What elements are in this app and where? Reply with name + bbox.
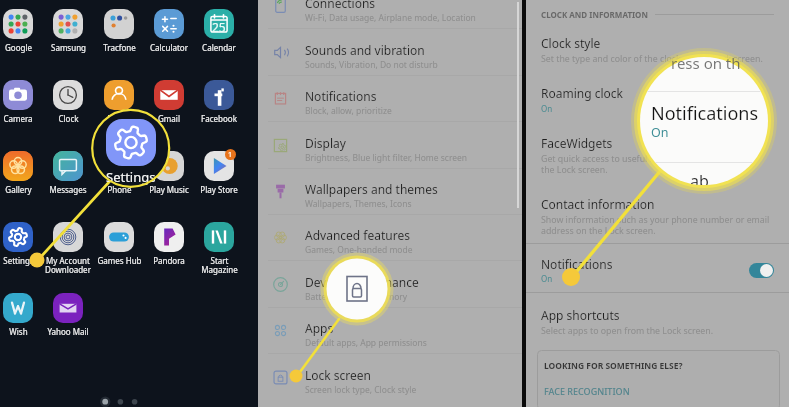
staticText: Start Magazine	[201, 255, 238, 276]
staticText: Messages	[49, 184, 87, 195]
staticText: On	[541, 103, 553, 114]
staticText: Wish	[9, 326, 28, 337]
staticText: Gallery	[5, 184, 32, 195]
button[interactable]: Wish	[0, 291, 43, 337]
button[interactable]: Google	[0, 7, 43, 53]
staticText: Camera	[3, 113, 33, 124]
button[interactable]: Notifications	[305, 88, 515, 117]
staticText: Clock	[58, 113, 79, 124]
staticText: Notifications	[541, 256, 613, 272]
staticText: Contact information	[541, 196, 655, 212]
staticText: App shortcuts	[541, 307, 620, 323]
button[interactable]: Camera	[0, 78, 43, 124]
staticText: ab	[690, 170, 709, 185]
button[interactable]: FaceWidgets	[541, 135, 776, 175]
staticText: Advanced features	[305, 227, 410, 243]
button[interactable]: Games Hub	[94, 220, 144, 266]
staticText: On	[651, 124, 669, 141]
button[interactable]: Notifications	[526, 248, 789, 292]
staticText: Lock screen	[305, 367, 372, 383]
button[interactable]: Phone	[94, 78, 144, 124]
button[interactable]: Sounds and vibration	[305, 42, 515, 71]
staticText: Samsung	[51, 42, 86, 53]
staticText: Yahoo Mail	[47, 326, 89, 337]
staticText: Display	[305, 135, 346, 151]
button[interactable]: Gallery	[0, 149, 43, 195]
staticText: Sounds and vibration	[305, 42, 425, 58]
staticText: Default apps, App permissions	[305, 337, 427, 349]
staticText: Games Hub	[97, 255, 142, 266]
staticText: Device maintenance	[305, 274, 419, 290]
button[interactable]: Play Music	[144, 149, 194, 195]
staticText: Wallpapers, Themes, Icons	[305, 198, 412, 210]
button[interactable]: My Account Downloader	[43, 220, 93, 276]
staticText: Wi-Fi, Data usage, Airplane mode, Locati…	[305, 12, 476, 24]
staticText: Screen lock type, Clock style	[305, 384, 417, 396]
staticText: FACE RECOGNITION	[544, 385, 630, 397]
staticText: Roaming clock	[541, 85, 623, 101]
staticText: 1	[228, 150, 233, 160]
button[interactable]: Apps	[305, 320, 515, 349]
staticText: Brightness, Blue light filter, Home scre…	[305, 152, 468, 164]
staticText: Notifications	[651, 101, 759, 126]
button[interactable]: Pandora	[144, 220, 194, 266]
staticText: FaceWidgets	[541, 135, 613, 151]
staticText: Settings	[106, 168, 156, 186]
button[interactable]: Samsung	[43, 7, 93, 53]
staticText: Phone	[107, 184, 132, 195]
staticText: Tracfone	[103, 42, 136, 53]
button[interactable]: Calculator	[144, 7, 194, 53]
button[interactable]: Connections	[305, 0, 515, 24]
staticText: Wallpapers and themes	[305, 181, 438, 197]
button[interactable]: Facebook	[194, 78, 244, 124]
staticText: Settings	[3, 255, 34, 266]
staticText: Get quick access to useful info on the L…	[541, 153, 679, 175]
staticText: My Account Downloader	[45, 255, 91, 276]
staticText: Clock style	[541, 35, 601, 51]
button[interactable]: App shortcuts	[541, 307, 776, 337]
staticText: Pandora	[153, 255, 185, 266]
staticText: Google	[5, 42, 32, 53]
staticText: Block, allow, prioritize	[305, 105, 392, 117]
staticText: Battery, Storage, Memory	[305, 291, 408, 303]
button[interactable]: Tracfone	[94, 7, 144, 53]
button[interactable]: Settings	[0, 220, 43, 266]
button[interactable]: Device maintenance	[305, 274, 515, 303]
staticText: Play Store	[200, 184, 238, 195]
staticText: CLOCK AND INFORMATION	[541, 9, 648, 20]
staticText: Sounds, Vibration, Do not disturb	[305, 59, 438, 71]
staticText: Play Music	[149, 184, 189, 195]
staticText: Calendar	[202, 42, 236, 53]
button[interactable]: Wallpapers and themes	[305, 181, 515, 210]
button[interactable]: 1	[194, 149, 244, 195]
staticText: Phone	[107, 113, 132, 124]
button[interactable]: Gmail	[144, 78, 194, 124]
staticText: Connections	[305, 0, 376, 11]
button[interactable]: Clock	[43, 78, 93, 124]
staticText: 25	[212, 19, 226, 35]
staticText: Gmail	[158, 113, 180, 124]
staticText: Games, One-handed mode	[305, 244, 413, 256]
button[interactable]: LOOKING FOR SOMETHING ELSE?	[537, 350, 780, 407]
staticText: Facebook	[201, 113, 237, 124]
button[interactable]: Roaming clock	[541, 85, 776, 114]
button[interactable]: Advanced features	[305, 227, 515, 256]
staticText: On	[541, 273, 553, 284]
staticText: Notifications	[305, 88, 377, 104]
button[interactable]: Yahoo Mail	[43, 291, 93, 337]
button[interactable]: Lock screen	[305, 367, 515, 396]
button[interactable]: Display	[305, 135, 515, 164]
staticText: Show information such as your phone numb…	[541, 214, 770, 236]
staticText: LOOKING FOR SOMETHING ELSE?	[544, 360, 683, 372]
staticText: Calculator	[150, 42, 188, 53]
button[interactable]: Phone	[94, 149, 144, 195]
staticText: ress on th	[671, 53, 741, 73]
staticText: Apps	[305, 320, 334, 336]
staticText: Set the type and color of the clock on t…	[541, 53, 763, 65]
staticText: Select apps to open from the Lock screen…	[541, 325, 714, 337]
button[interactable]: 25	[194, 7, 244, 53]
button[interactable]: Start Magazine	[194, 220, 244, 276]
button[interactable]: Clock style	[541, 35, 776, 65]
button[interactable]: Contact information	[541, 196, 776, 236]
button[interactable]: Messages	[43, 149, 93, 195]
